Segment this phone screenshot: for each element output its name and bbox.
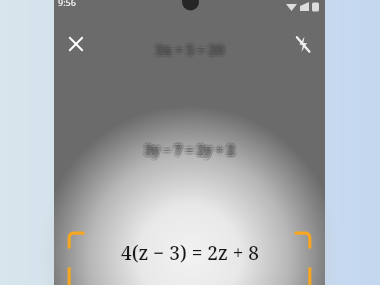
staticText: 3y − 7 = 2y + 2: [147, 141, 238, 159]
staticText: 3x + 5 = 20: [157, 43, 226, 61]
staticText: 3y − 7 = 2y + 2: [144, 138, 235, 156]
staticText: 3x + 5 = 20: [153, 43, 222, 61]
staticText: 3y − 7 = 2y + 2: [142, 143, 233, 161]
button[interactable]: Close: [58, 26, 94, 62]
staticText: 3y − 7 = 2y + 2: [146, 139, 237, 157]
staticText: 9:56: [58, 0, 76, 8]
staticText: 3x + 5 = 20: [156, 41, 225, 59]
staticText: 3x + 5 = 20: [155, 38, 224, 56]
staticText: 3x + 5 = 20: [158, 41, 227, 59]
staticText: 3y − 7 = 2y + 2: [144, 141, 235, 159]
staticText: 3y − 7 = 2y + 2: [145, 141, 236, 159]
button[interactable]: 4(z − 3) = 2z + 8: [66, 228, 313, 285]
staticText: 3y − 7 = 2y + 2: [142, 139, 233, 157]
staticText: 3y − 7 = 2y + 2: [141, 141, 232, 159]
staticText: 3x + 5 = 20: [152, 41, 221, 59]
staticText: 4(z − 3) = 2z + 8: [121, 240, 259, 266]
staticText: 3x + 5 = 20: [157, 39, 226, 57]
staticText: 3y − 7 = 2y + 2: [143, 141, 234, 159]
staticText: 3x + 5 = 20: [153, 39, 222, 57]
staticText: 3x + 5 = 20: [155, 41, 224, 59]
staticText: 3x + 5 = 20: [155, 44, 224, 62]
staticText: 3y − 7 = 2y + 2: [146, 143, 237, 161]
staticText: 3y − 7 = 2y + 2: [144, 144, 235, 162]
staticText: 3x + 5 = 20: [154, 41, 223, 59]
button[interactable]: Flash off: [285, 26, 321, 62]
